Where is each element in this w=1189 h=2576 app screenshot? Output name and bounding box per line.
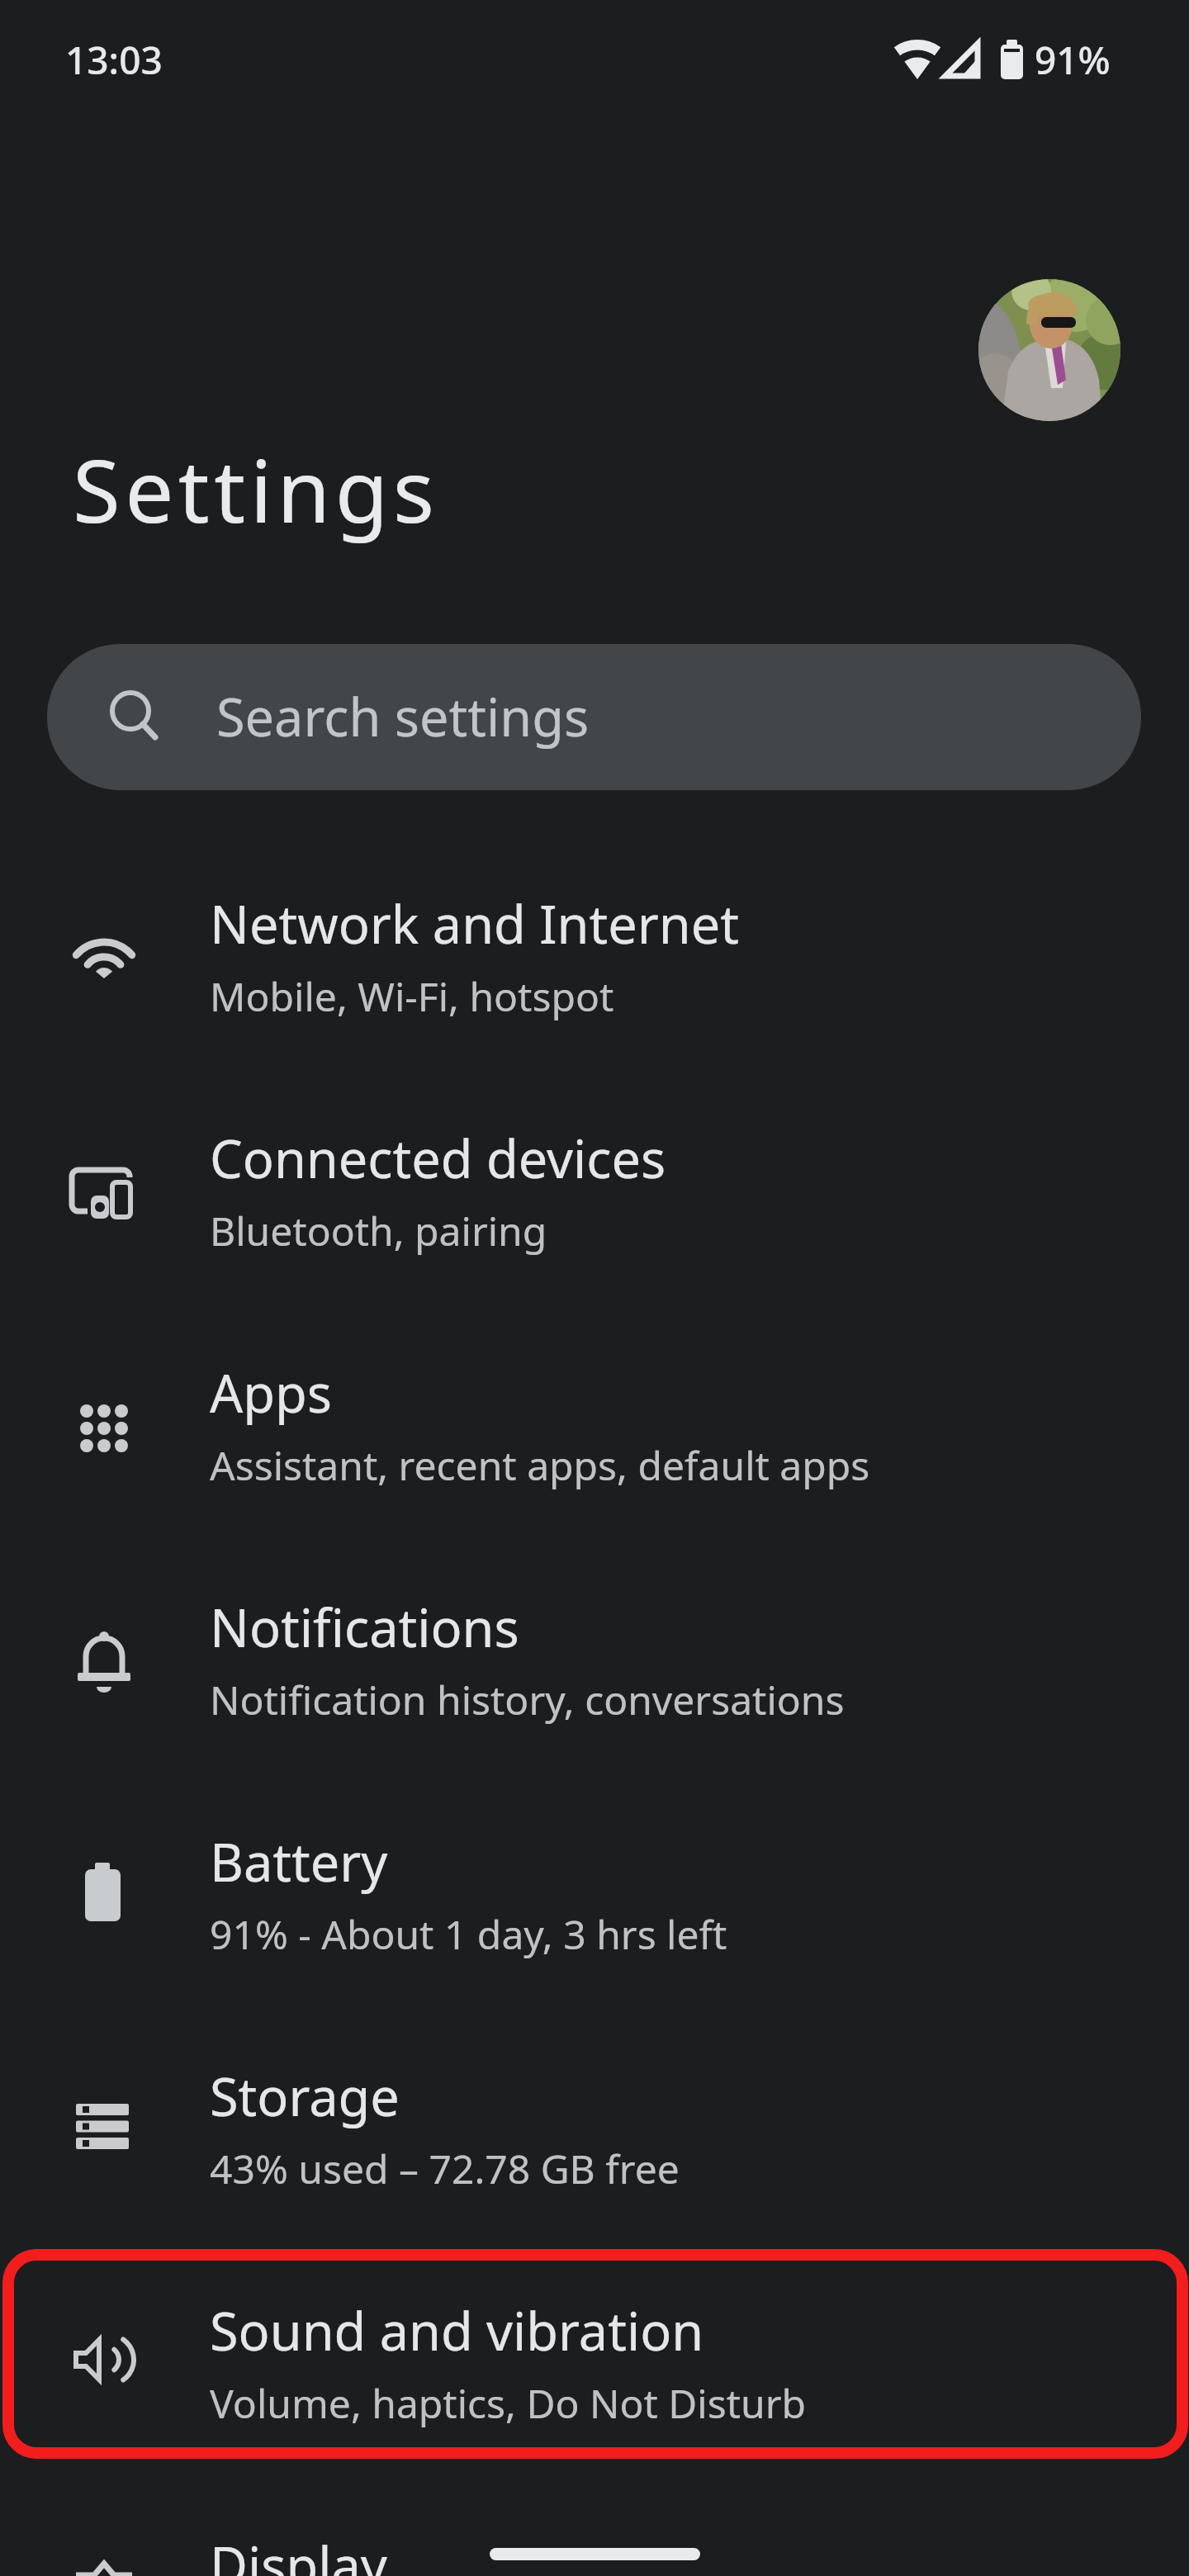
staticText: Storage — [210, 2061, 400, 2132]
staticText: Connected devices — [210, 1123, 666, 1194]
staticText: Battery — [210, 1826, 388, 1897]
staticText: 91% — [1035, 34, 1111, 83]
staticText: Notification history, conversations — [210, 1673, 845, 1726]
staticText: Bluetooth, pairing — [210, 1204, 547, 1257]
staticText: Notifications — [210, 1592, 519, 1663]
staticText: Settings — [73, 430, 439, 548]
staticText: Apps — [210, 1357, 332, 1428]
staticText: Mobile, Wi-Fi, hotspot — [210, 969, 614, 1023]
staticText: 91% - About 1 day, 3 hrs left — [210, 1907, 727, 1961]
staticText: 43% used – 72.78 GB free — [210, 2142, 680, 2195]
staticText: Assistant, recent apps, default apps — [210, 1438, 870, 1492]
staticText: Display — [210, 2530, 387, 2576]
staticText: Volume, haptics, Do Not Disturb — [210, 2376, 807, 2430]
staticText: Network and Internet — [210, 888, 740, 959]
staticText: 13:03 — [65, 34, 163, 83]
staticText: Sound and vibration — [210, 2295, 704, 2366]
staticText: Search settings — [216, 681, 590, 752]
